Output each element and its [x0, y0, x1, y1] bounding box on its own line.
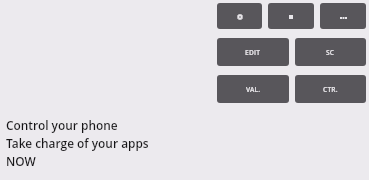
staticText: CTR. [323, 85, 338, 94]
button[interactable]: More options [320, 3, 366, 29]
staticText: VAL. [246, 85, 261, 94]
staticText: SC [326, 48, 335, 57]
button[interactable]: EDIT [217, 38, 289, 66]
button[interactable]: Stop [268, 3, 314, 29]
button[interactable]: VAL. [217, 75, 289, 103]
button[interactable]: CTR. [295, 75, 366, 103]
button[interactable]: SC [295, 38, 366, 66]
staticText: EDIT [245, 48, 261, 57]
staticText: Control your phone Take charge of your a… [6, 117, 149, 170]
button[interactable]: Settings [217, 3, 262, 29]
